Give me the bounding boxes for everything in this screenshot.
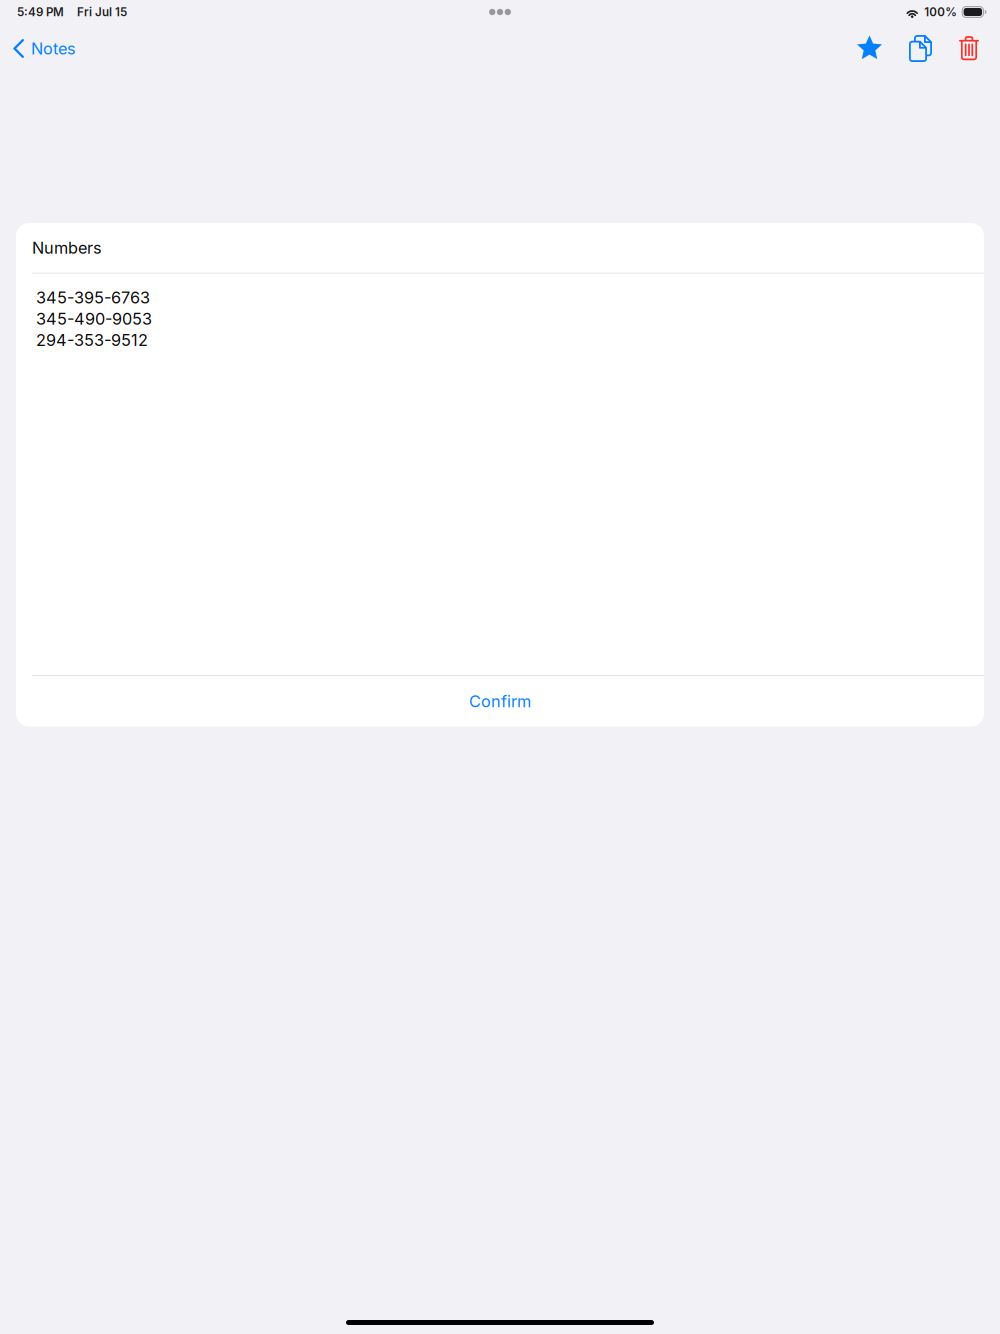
button[interactable]: Favorite: [838, 26, 891, 70]
staticText: 100%: [924, 5, 957, 19]
staticText: Notes: [31, 39, 76, 58]
staticText: Fri Jul 15: [77, 5, 127, 19]
button[interactable]: Duplicate: [891, 26, 942, 70]
staticText: Confirm: [469, 691, 531, 711]
staticText: Numbers: [32, 238, 102, 258]
button[interactable]: Confirm: [16, 676, 984, 726]
staticText: 345-395-6763: [36, 288, 150, 307]
button[interactable]: Notes: [0, 32, 86, 65]
staticText: 345-490-9053: [36, 309, 152, 329]
staticText: 294-353-9512: [36, 330, 148, 350]
staticText: 5:49 PM: [17, 5, 64, 19]
button[interactable]: Delete: [942, 26, 1000, 70]
